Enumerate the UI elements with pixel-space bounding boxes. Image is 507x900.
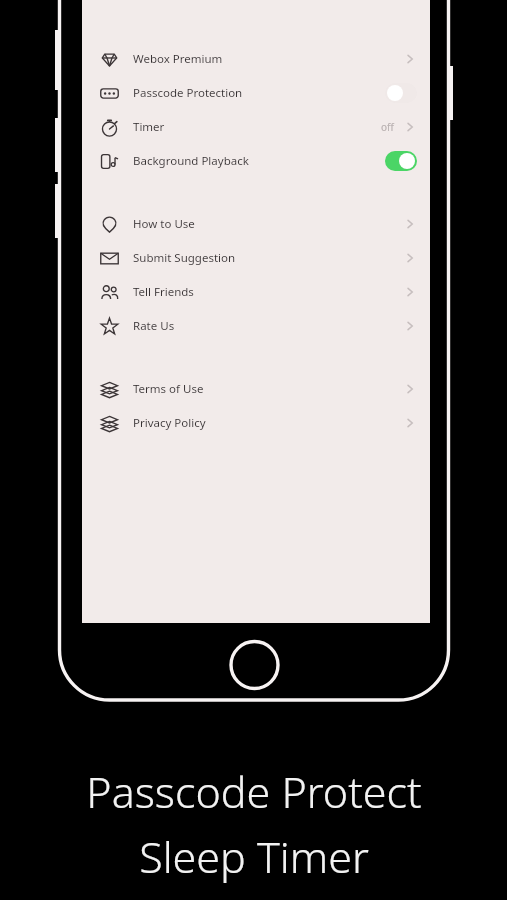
button[interactable]: Background Playback <box>82 144 430 178</box>
staticText: Rate Us <box>133 318 175 334</box>
button[interactable]: Rate Us <box>82 309 430 343</box>
button[interactable]: Tell Friends <box>82 275 430 309</box>
button[interactable]: Submit Suggestion <box>82 241 430 275</box>
button[interactable]: How to Use <box>82 207 430 241</box>
button[interactable]: Privacy Policy <box>82 406 430 440</box>
staticText: Privacy Policy <box>133 415 206 431</box>
staticText: Background Playback <box>133 153 249 169</box>
button[interactable]: Toggle on <box>385 151 417 171</box>
button[interactable]: Terms of Use <box>82 372 430 406</box>
button[interactable]: Toggle off <box>385 83 417 103</box>
staticText: off <box>381 120 394 134</box>
staticText: Submit Suggestion <box>133 250 236 266</box>
staticText: Tell Friends <box>133 284 194 300</box>
staticText: Passcode Protect <box>86 762 422 821</box>
button[interactable]: Webox Premium <box>82 42 430 76</box>
staticText: Timer <box>133 119 165 135</box>
button[interactable]: Timer <box>82 110 430 144</box>
staticText: Passcode Protection <box>133 85 243 101</box>
staticText: Sleep Timer <box>139 827 369 886</box>
staticText: Webox Premium <box>133 51 223 67</box>
staticText: Terms of Use <box>133 381 204 397</box>
button[interactable]: Passcode Protection <box>82 76 430 110</box>
staticText: How to Use <box>133 216 195 232</box>
